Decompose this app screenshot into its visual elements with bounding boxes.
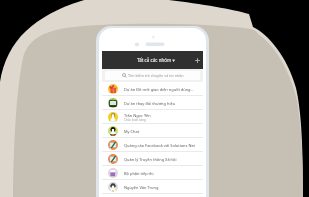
staticText: Bộ phận tiếp thị — [124, 171, 154, 176]
button[interactable]: Create new group — [192, 51, 203, 69]
button[interactable]: Tất cả các nhóm ▾ — [102, 51, 203, 69]
button[interactable]: Bộ phận tiếp thị — [102, 166, 203, 180]
button[interactable]: Quản lý Truyền thông Xã hội — [102, 152, 203, 166]
staticText: Quản lý Truyền thông Xã hội — [124, 157, 177, 162]
button[interactable]: Quảng cáo Facebook với Solutions Net — [102, 138, 203, 152]
staticText: Chúc buổi sáng — [124, 118, 146, 122]
button[interactable]: Dự án Đồ mới giao diện người dùng... — [102, 82, 203, 96]
staticText: Dự án thay đổi thương hiệu — [124, 101, 176, 106]
staticText: Tìm kiếm trò chuyện và tin nhắn — [128, 73, 184, 78]
button[interactable]: Trần Ngọc Yến — [102, 110, 203, 124]
button[interactable]: Nguyễn Văn Trung — [102, 180, 203, 194]
staticText: Nguyễn Văn Trung — [124, 185, 159, 190]
button[interactable]: Tìm kiếm trò chuyện và tin nhắn — [105, 71, 200, 80]
staticText: Tất cả các nhóm ▾ — [137, 57, 175, 63]
button[interactable]: My Chat — [102, 124, 203, 138]
staticText: Quảng cáo Facebook với Solutions Net — [124, 143, 196, 148]
staticText: Trần Ngọc Yến — [124, 113, 151, 118]
button[interactable]: Dự án thay đổi thương hiệu — [102, 96, 203, 110]
staticText: Dự án Đồ mới giao diện người dùng... — [124, 87, 194, 92]
staticText: My Chat — [124, 129, 140, 134]
